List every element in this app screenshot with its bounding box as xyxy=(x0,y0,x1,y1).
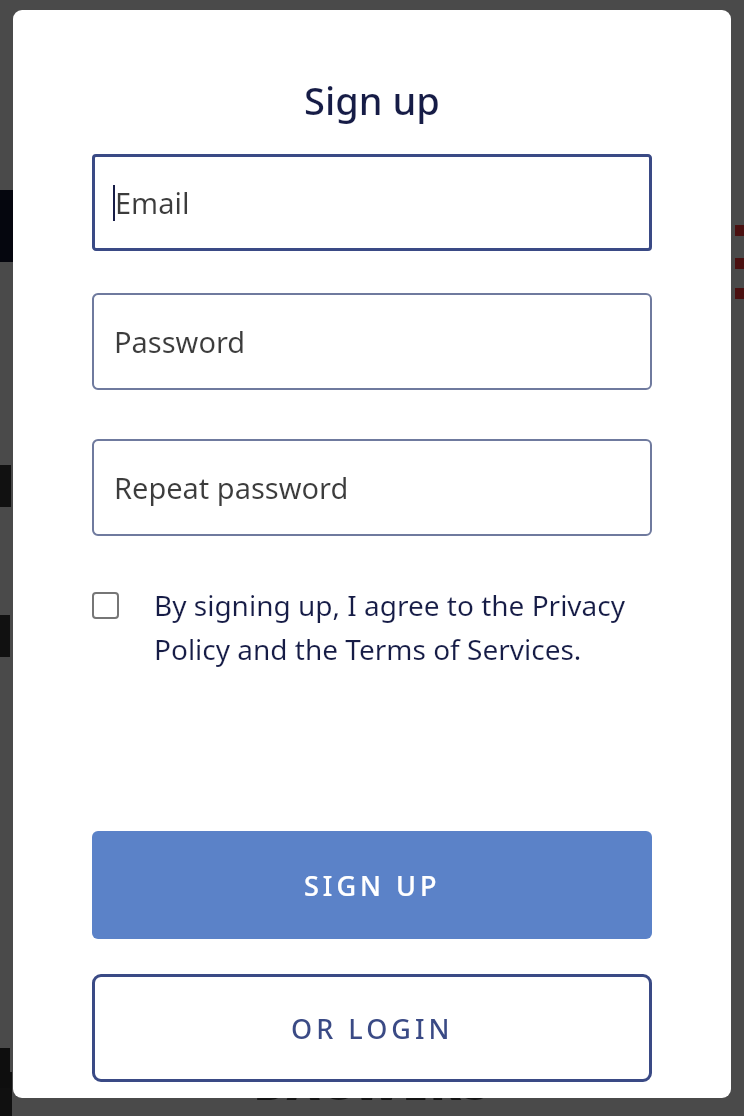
button[interactable]: Agree to Privacy Policy and Terms xyxy=(92,582,652,668)
staticText: Email xyxy=(115,183,190,222)
staticText: Sign up xyxy=(13,74,731,126)
other: Agree to Privacy Policy and Terms xyxy=(92,592,119,619)
button[interactable]: SIGN UP xyxy=(92,831,652,939)
staticText: By signing up, I agree to the Privacy Po… xyxy=(154,586,652,668)
button[interactable]: OR LOGIN xyxy=(92,974,652,1082)
button[interactable]: Password xyxy=(92,293,652,390)
staticText: Repeat password xyxy=(114,468,349,507)
button[interactable]: Email xyxy=(92,154,652,251)
staticText: BACWERS xyxy=(253,1051,492,1114)
staticText: Password xyxy=(114,322,246,361)
button[interactable]: Repeat password xyxy=(92,439,652,536)
staticText: OR LOGIN xyxy=(291,1010,454,1047)
staticText: SIGN UP xyxy=(304,867,441,904)
